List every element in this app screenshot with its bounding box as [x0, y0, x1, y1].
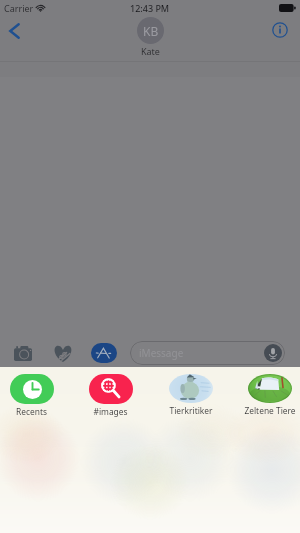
staticText: iMessage — [139, 346, 184, 360]
staticText: Kate — [141, 45, 160, 57]
button[interactable]: KB — [137, 17, 164, 57]
button[interactable]: Zeltene Tiere — [230, 367, 300, 416]
button[interactable]: App Store — [91, 343, 117, 363]
button[interactable]: Digital Touch — [53, 345, 73, 362]
staticText: Carrier — [4, 2, 34, 14]
button[interactable]: iMessage — [130, 341, 285, 365]
staticText: KB — [143, 23, 159, 39]
button[interactable]: Details — [270, 20, 290, 40]
button[interactable]: Tierkritiker — [151, 367, 230, 416]
button[interactable]: Camera — [14, 346, 32, 361]
staticText: Zeltene Tiere — [244, 405, 296, 416]
staticText: 12:43 PM — [130, 2, 170, 14]
staticText: Recents — [16, 406, 47, 417]
button[interactable]: Dictate — [264, 344, 282, 362]
staticText: Tierkritiker — [169, 405, 213, 416]
button[interactable]: Recents — [0, 367, 71, 417]
button[interactable]: #images — [71, 367, 150, 417]
button[interactable]: Back — [2, 21, 26, 41]
staticText: #images — [93, 406, 128, 417]
